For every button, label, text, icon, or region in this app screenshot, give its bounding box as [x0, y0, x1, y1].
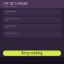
button[interactable]: Keep reading	[3, 50, 61, 56]
button[interactable]: A second winter	[3, 24, 61, 30]
staticText: The Ice Carousel	[3, 2, 28, 5]
staticText: The frozen orchard	[5, 18, 20, 20]
staticText: Opening the gate	[5, 10, 16, 12]
staticText: 4 min	[5, 12, 8, 14]
button[interactable]: Opening the gate	[3, 9, 61, 15]
button[interactable]: The frozen orchard	[3, 17, 61, 23]
button[interactable]: Library · Settings	[26, 60, 37, 61]
staticText: 3 min	[5, 34, 8, 36]
staticText: Keep reading	[21, 51, 42, 55]
staticText: A second winter	[5, 25, 16, 27]
staticText: Glass and lanterns	[5, 32, 18, 34]
staticText: 6 min	[5, 20, 8, 21]
staticText: Library · Settings	[26, 60, 37, 61]
button[interactable]: Glass and lanterns	[3, 31, 61, 37]
staticText: Chapter 3 · 12 min left	[3, 6, 15, 7]
staticText: 5 min	[5, 27, 8, 29]
